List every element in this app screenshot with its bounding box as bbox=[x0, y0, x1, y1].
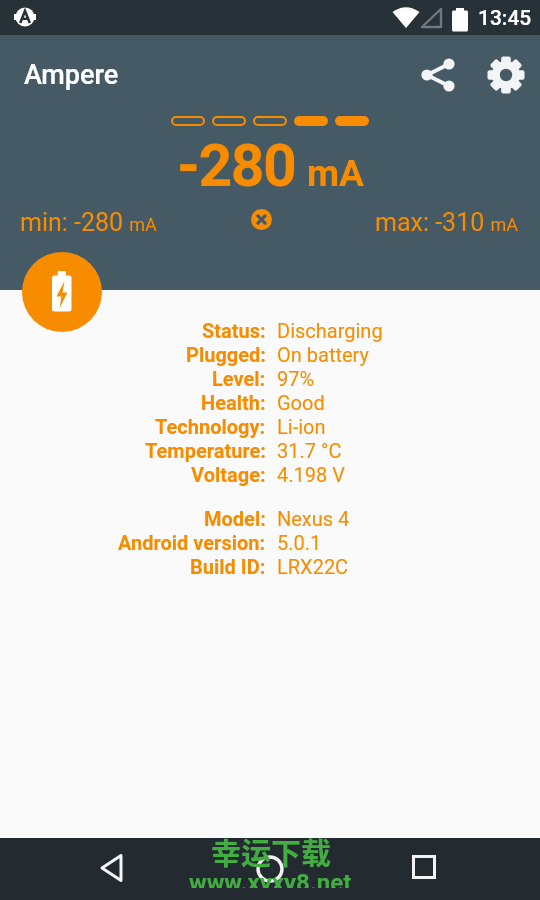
button[interactable] bbox=[242, 845, 298, 893]
button[interactable] bbox=[85, 844, 141, 892]
staticText: Model: bbox=[204, 507, 266, 530]
staticText: 4.198 V bbox=[277, 463, 345, 486]
button[interactable] bbox=[396, 843, 452, 891]
staticText: Ampere bbox=[24, 59, 119, 91]
staticText: 13:45 bbox=[478, 6, 532, 31]
staticText: 97% bbox=[277, 367, 315, 390]
staticText: Voltage: bbox=[191, 463, 266, 486]
button[interactable] bbox=[22, 252, 102, 332]
staticText: LRX22C bbox=[277, 555, 349, 578]
staticText: 幸运下载 bbox=[211, 829, 331, 872]
staticText: -280 bbox=[177, 131, 296, 200]
staticText: Plugged: bbox=[186, 343, 266, 366]
staticText: 5.0.1 bbox=[277, 531, 322, 554]
staticText: Good bbox=[277, 391, 325, 414]
staticText: Status: bbox=[202, 319, 266, 342]
staticText: Temperature: bbox=[145, 439, 266, 462]
staticText: www.xyxy8.net bbox=[189, 869, 352, 888]
staticText: Health: bbox=[201, 391, 266, 414]
button[interactable] bbox=[484, 53, 528, 97]
staticText: min: -280 mA bbox=[20, 208, 157, 237]
staticText: Li-ion bbox=[277, 415, 326, 438]
staticText: Discharging bbox=[277, 319, 383, 342]
staticText: Android version: bbox=[118, 531, 266, 554]
staticText: max: -310 mA bbox=[375, 208, 518, 237]
staticText: 31.7 °C bbox=[277, 439, 342, 462]
staticText: Build ID: bbox=[190, 555, 266, 578]
staticText: Nexus 4 bbox=[277, 507, 350, 530]
staticText: Level: bbox=[212, 367, 266, 390]
button[interactable] bbox=[251, 209, 272, 230]
button[interactable] bbox=[416, 53, 460, 97]
staticText: mA bbox=[307, 152, 364, 195]
staticText: On battery bbox=[277, 343, 369, 366]
staticText: Technology: bbox=[155, 415, 266, 438]
